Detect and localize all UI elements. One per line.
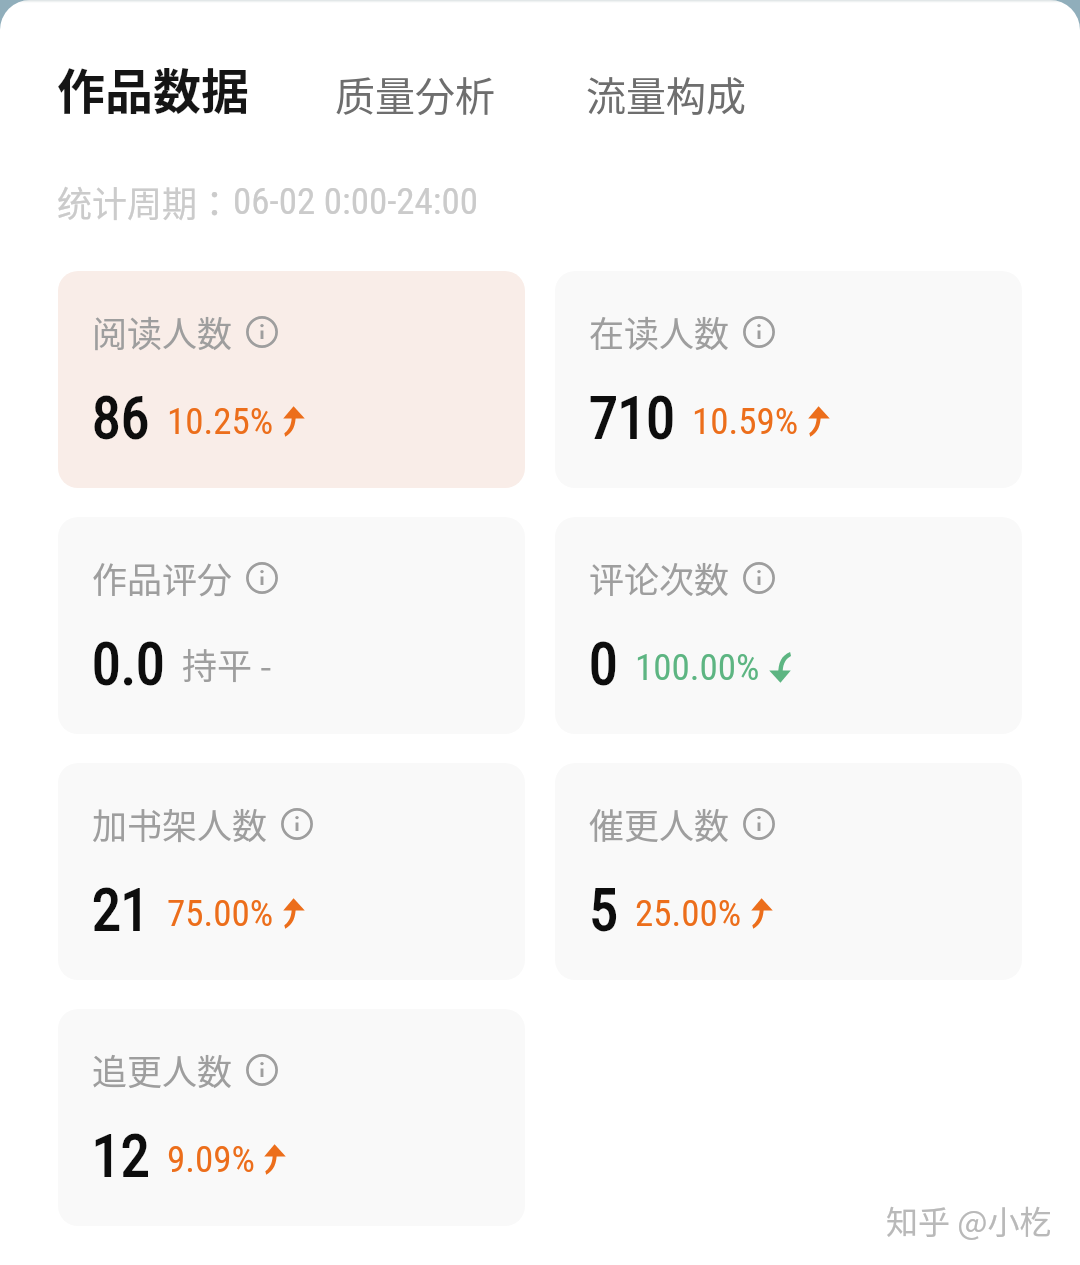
button[interactable]: 阅读人数 [58, 271, 525, 488]
button[interactable]: 在读人数 [555, 271, 1022, 488]
button[interactable]: 质量分析 [335, 65, 495, 123]
staticText: 25.00% [635, 892, 742, 935]
staticText: 持平 - [182, 638, 272, 689]
button[interactable]: 关于作品评分 的说明 [246, 562, 278, 594]
staticText: 评论次数 [589, 552, 730, 603]
button[interactable]: 关于评论次数 的说明 [743, 562, 775, 594]
staticText: 06-02 0:00-24:00 [233, 180, 479, 223]
staticText: 统计周期： [57, 176, 233, 227]
staticText: 5 [589, 876, 618, 944]
staticText: 100.00% [635, 646, 760, 689]
button[interactable]: 关于加书架人数 的说明 [281, 808, 313, 840]
staticText: 加书架人数 [92, 798, 268, 849]
button[interactable]: 评论次数 [555, 517, 1022, 734]
button[interactable]: 关于在读人数 的说明 [743, 316, 775, 348]
staticText: 阅读人数 [92, 306, 233, 357]
staticText: 21 [92, 876, 150, 944]
staticText: 追更人数 [92, 1044, 233, 1095]
button[interactable]: 追更人数 [58, 1009, 525, 1226]
staticText: 75.00% [167, 892, 274, 935]
button[interactable]: 作品评分 [58, 517, 525, 734]
staticText: 86 [92, 384, 150, 452]
staticText: 在读人数 [589, 306, 730, 357]
staticText: 9.09% [167, 1138, 255, 1181]
staticText: 作品数据 [57, 53, 250, 123]
button[interactable]: 作品数据 [57, 53, 250, 123]
button[interactable]: 关于追更人数 的说明 [246, 1054, 278, 1086]
button[interactable]: 加书架人数 [58, 763, 525, 980]
button[interactable]: 催更人数 [555, 763, 1022, 980]
staticText: 作品评分 [92, 552, 233, 603]
staticText: 710 [589, 384, 675, 452]
button[interactable]: 关于催更人数 的说明 [743, 808, 775, 840]
staticText: 0 [589, 630, 618, 698]
button[interactable]: 关于阅读人数 的说明 [246, 316, 278, 348]
staticText: 流量构成 [586, 65, 746, 123]
staticText: 10.25% [167, 400, 274, 443]
staticText: 催更人数 [589, 798, 730, 849]
staticText: 10.59% [692, 400, 799, 443]
staticText: 知乎 @小杚 [886, 1197, 1052, 1243]
staticText: 质量分析 [335, 65, 495, 123]
staticText: 0.0 [92, 630, 165, 698]
staticText: 12 [92, 1122, 150, 1190]
button[interactable]: 流量构成 [586, 65, 746, 123]
